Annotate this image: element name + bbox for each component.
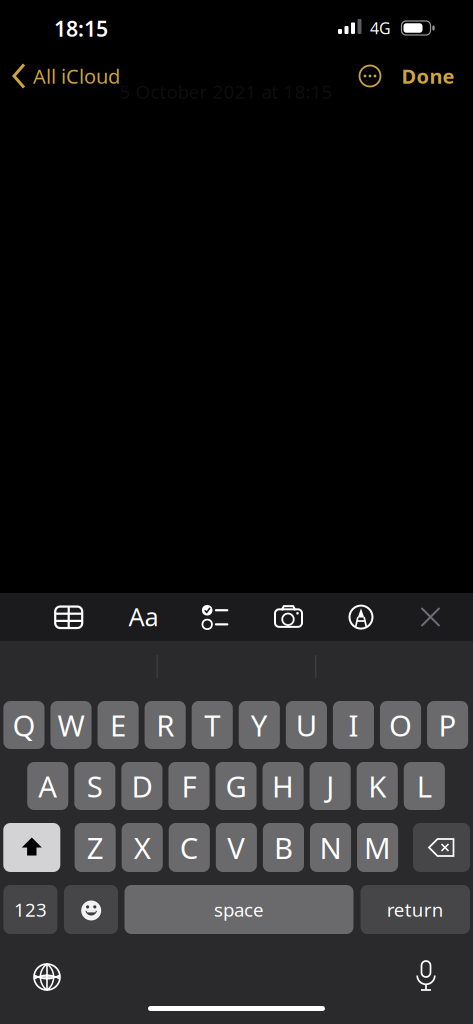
- button[interactable]: S: [74, 762, 115, 810]
- button[interactable]: return: [360, 885, 470, 934]
- button[interactable]: M: [357, 823, 398, 872]
- button[interactable]: Text format: [121, 596, 165, 636]
- button[interactable]: Insert table: [49, 597, 89, 637]
- staticText: L: [417, 766, 432, 805]
- staticText: All iCloud: [33, 63, 120, 89]
- staticText: O: [389, 705, 412, 744]
- staticText: N: [319, 828, 341, 867]
- button[interactable]: O: [380, 701, 421, 749]
- button[interactable]: P: [427, 701, 468, 749]
- staticText: U: [296, 705, 317, 744]
- button[interactable]: F: [168, 762, 209, 810]
- button[interactable]: T: [192, 701, 233, 749]
- button[interactable]: I: [333, 701, 374, 749]
- button[interactable]: D: [121, 762, 162, 810]
- button[interactable]: Q: [3, 701, 44, 749]
- button[interactable]: X: [122, 823, 163, 872]
- button[interactable]: C: [169, 823, 210, 872]
- button[interactable]: space: [124, 885, 353, 934]
- button[interactable]: A: [27, 762, 68, 810]
- staticText: 5 October 2021 at 18:15: [119, 79, 332, 104]
- staticText: D: [131, 766, 152, 805]
- staticText: H: [272, 766, 294, 805]
- button[interactable]: Y: [239, 701, 280, 749]
- button[interactable]: K: [357, 762, 398, 810]
- button[interactable]: 123: [3, 885, 57, 934]
- staticText: X: [134, 828, 151, 867]
- button[interactable]: Next keyboard: [31, 961, 63, 993]
- staticText: K: [368, 766, 386, 805]
- staticText: B: [274, 828, 293, 867]
- button[interactable]: V: [216, 823, 257, 872]
- button[interactable]: Insert photo: [266, 597, 310, 637]
- staticText: P: [439, 705, 457, 744]
- button[interactable]: L: [404, 762, 445, 810]
- button[interactable]: Markup: [341, 597, 381, 637]
- button[interactable]: Emoji: [64, 885, 118, 934]
- staticText: Z: [87, 828, 104, 867]
- button[interactable]: Done: [401, 56, 454, 96]
- staticText: Q: [12, 705, 35, 744]
- staticText: F: [181, 766, 196, 805]
- staticText: 123: [14, 897, 47, 922]
- staticText: J: [326, 766, 334, 805]
- staticText: W: [57, 705, 84, 744]
- staticText: 18:15: [54, 14, 108, 43]
- button[interactable]: R: [145, 701, 186, 749]
- staticText: M: [364, 828, 391, 867]
- staticText: 4G: [370, 17, 391, 39]
- button[interactable]: H: [263, 762, 304, 810]
- button[interactable]: G: [215, 762, 257, 810]
- staticText: V: [227, 828, 245, 867]
- button[interactable]: U: [286, 701, 327, 749]
- staticText: T: [204, 705, 220, 744]
- button[interactable]: Dismiss keyboard: [415, 602, 445, 632]
- button[interactable]: N: [310, 823, 351, 872]
- staticText: A: [38, 766, 57, 805]
- button[interactable]: Shift: [3, 823, 60, 872]
- staticText: Aa: [128, 600, 158, 633]
- staticText: G: [225, 766, 246, 805]
- staticText: E: [110, 705, 126, 744]
- button[interactable]: More: [355, 61, 385, 91]
- button[interactable]: Back to All iCloud: [0, 54, 130, 98]
- staticText: Y: [251, 705, 268, 744]
- staticText: Done: [401, 63, 454, 89]
- staticText: return: [387, 897, 444, 922]
- staticText: space: [214, 897, 264, 922]
- staticText: S: [87, 766, 103, 805]
- button[interactable]: Dictate: [411, 961, 441, 991]
- button[interactable]: Delete: [413, 823, 470, 872]
- staticText: C: [180, 828, 199, 867]
- button[interactable]: B: [263, 823, 304, 872]
- button[interactable]: Checklist: [198, 597, 238, 637]
- staticText: R: [156, 705, 174, 744]
- button[interactable]: W: [50, 701, 92, 749]
- staticText: I: [348, 705, 358, 744]
- button[interactable]: J: [310, 762, 351, 810]
- button[interactable]: E: [97, 701, 139, 749]
- button[interactable]: Z: [75, 823, 116, 872]
